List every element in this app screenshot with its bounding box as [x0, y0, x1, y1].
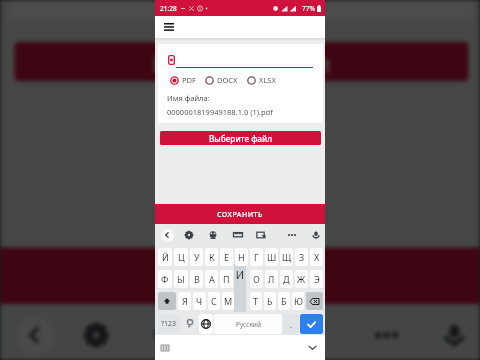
staticText: О [253, 273, 260, 285]
button[interactable]: Shift [158, 292, 176, 310]
staticText: Русский [236, 320, 261, 329]
button[interactable]: Voice input [440, 321, 468, 349]
button[interactable]: Выберите файл [160, 131, 321, 145]
staticText: Щ [282, 251, 292, 263]
button[interactable]: Ы [174, 270, 188, 288]
staticText: Г [254, 251, 259, 263]
staticText: 0000001819949188.1.0 (1).pdf [167, 107, 273, 117]
staticText: Е [224, 251, 230, 263]
button[interactable]: Keyboard layout [160, 343, 170, 353]
button[interactable]: СОХРАНИТЬ [0, 248, 480, 304]
button[interactable]: М [222, 292, 234, 310]
button[interactable]: Ц [174, 248, 188, 266]
button[interactable]: Menu [164, 23, 174, 31]
button[interactable]: С [208, 292, 220, 310]
button[interactable]: Выберите файл [14, 42, 468, 81]
button[interactable]: Х [310, 248, 323, 266]
staticText: Б [281, 295, 287, 307]
button[interactable]: Н [235, 248, 248, 266]
staticText: А [209, 273, 215, 285]
staticText: Ц [178, 251, 185, 263]
button[interactable]: ?123 [158, 314, 180, 334]
staticText: Ф [161, 273, 169, 285]
button[interactable]: XLSX [247, 75, 276, 85]
staticText: Ж [297, 273, 306, 285]
staticText: Я [182, 295, 188, 307]
button[interactable]: Русский [214, 314, 282, 334]
staticText: PDF [182, 75, 196, 85]
staticText: В [194, 273, 200, 285]
button[interactable]: Л [265, 270, 278, 288]
button[interactable]: О [250, 270, 263, 288]
button[interactable]: Ю [292, 292, 304, 310]
staticText: Выберите файл [209, 133, 273, 144]
button[interactable]: Stickers [208, 230, 218, 240]
staticText: Н [238, 251, 245, 263]
button[interactable]: Я [178, 292, 191, 310]
button[interactable]: DOCX [205, 75, 238, 85]
staticText: И [234, 267, 246, 282]
button[interactable]: Ж [295, 270, 308, 288]
button[interactable]: СОХРАНИТЬ [155, 204, 325, 224]
button[interactable]: More [287, 230, 297, 240]
button[interactable]: Hide keyboard [307, 342, 318, 353]
button[interactable]: У [190, 248, 203, 266]
button[interactable]: Done [300, 314, 323, 334]
button[interactable]: А [205, 270, 218, 288]
staticText: Выберите файл [153, 47, 333, 78]
staticText: Х [314, 251, 320, 263]
button[interactable]: Ф [158, 270, 172, 288]
button[interactable]: Э [310, 270, 323, 288]
button[interactable]: Emoji [181, 314, 198, 334]
button[interactable]: Change language [199, 314, 213, 334]
button[interactable]: Г [250, 248, 263, 266]
button[interactable]: Т [250, 292, 262, 310]
button[interactable]: В [190, 270, 203, 288]
staticText: Ш [267, 251, 277, 263]
button[interactable]: З [295, 248, 308, 266]
staticText: СОХРАНИТЬ [175, 262, 305, 290]
button[interactable]: Ь [264, 292, 276, 310]
staticText: 77% [302, 4, 315, 13]
staticText: Э [314, 273, 320, 285]
staticText: Д [283, 273, 290, 285]
button[interactable]: . [283, 314, 299, 334]
button[interactable]: Settings [82, 321, 110, 349]
button[interactable]: Settings [184, 230, 194, 240]
staticText: Ч [196, 295, 203, 307]
staticText: Имя файла: [167, 93, 210, 103]
staticText: СОХРАНИТЬ [217, 209, 263, 219]
button[interactable]: Ч [193, 292, 206, 310]
staticText: П [223, 273, 230, 285]
button[interactable]: Б [278, 292, 290, 310]
staticText: С [211, 295, 217, 307]
button[interactable]: Д [280, 270, 293, 288]
button[interactable]: More [372, 321, 401, 349]
button[interactable]: Й [158, 248, 172, 266]
staticText: З [299, 251, 305, 263]
button[interactable]: PDF [170, 75, 196, 85]
staticText: У [194, 251, 200, 263]
button[interactable]: Back [162, 230, 172, 240]
staticText: Ы [177, 273, 185, 285]
button[interactable]: GIF [220, 321, 248, 349]
staticText: К [209, 251, 215, 263]
staticText: 0000001819949188.1.0 (1).pdf [34, 0, 333, 2]
staticText: Л [268, 273, 275, 285]
staticText: Ь [267, 295, 273, 307]
button[interactable]: Stickers [150, 321, 178, 349]
button[interactable]: Back [20, 321, 48, 349]
button[interactable]: Clipboard [285, 321, 313, 349]
button[interactable]: GIF [233, 230, 243, 240]
button[interactable]: К [205, 248, 218, 266]
staticText: ?123 [161, 319, 177, 329]
staticText: Т [253, 295, 259, 307]
button[interactable]: Voice input [311, 230, 321, 240]
button[interactable]: П [220, 270, 233, 288]
button[interactable]: Clipboard [256, 230, 266, 240]
button[interactable]: Щ [280, 248, 293, 266]
button[interactable]: Е [220, 248, 233, 266]
button[interactable]: Ш [265, 248, 278, 266]
button[interactable]: Backspace [306, 292, 323, 310]
staticText: Й [162, 251, 169, 263]
